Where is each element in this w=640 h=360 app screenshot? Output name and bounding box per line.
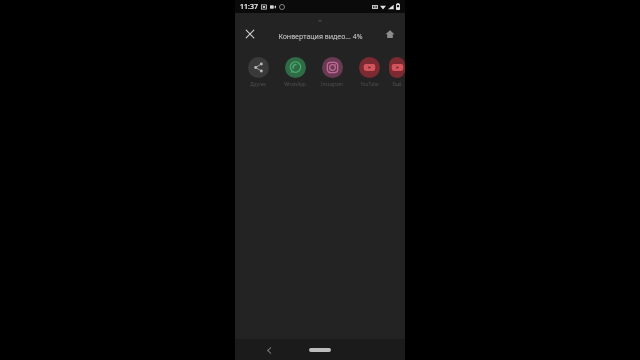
button[interactable]: Домой: [379, 23, 401, 45]
staticText: Конвертация видео… 4%: [278, 32, 363, 42]
staticText: Instagram: [321, 81, 343, 87]
staticText: Другие: [250, 81, 266, 87]
button[interactable]: Instagram: [315, 57, 349, 87]
staticText: YouTube: [360, 81, 379, 87]
button[interactable]: YouTube: [352, 57, 386, 87]
button[interactable]: Назад: [261, 342, 277, 358]
button[interactable]: Закрыть: [239, 23, 261, 45]
button[interactable]: Другие: [241, 57, 275, 87]
button[interactable]: Домой: [307, 343, 333, 357]
staticText: 11:37: [240, 2, 258, 12]
button[interactable]: WhatsApp: [278, 57, 312, 87]
staticText: Ещё: [392, 81, 402, 87]
staticText: WhatsApp: [284, 81, 306, 87]
button[interactable]: Ещё: [389, 57, 405, 87]
